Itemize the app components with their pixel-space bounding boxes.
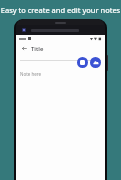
staticText: Note here: [20, 71, 42, 77]
button[interactable]: Change colour: [77, 57, 88, 68]
button[interactable]: App icon: [22, 28, 26, 32]
button[interactable]: Back: [20, 44, 29, 53]
staticText: Easy to create and edit your notes: [0, 5, 121, 15]
staticText: Title: [31, 45, 44, 53]
button[interactable]: Save note: [90, 57, 101, 68]
